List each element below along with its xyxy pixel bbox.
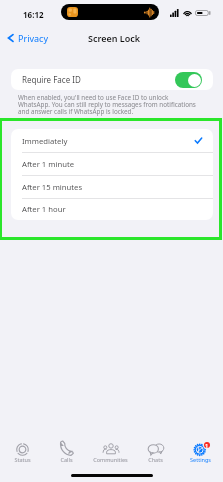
- button[interactable]: Chats: [133, 443, 178, 463]
- button[interactable]: Require Face ID: [11, 69, 213, 90]
- button[interactable]: Calls: [44, 443, 88, 463]
- staticText: 16:12: [23, 9, 44, 20]
- staticText: Immediately: [22, 136, 68, 146]
- staticText: Require Face ID: [22, 74, 81, 85]
- button[interactable]: Require Face ID toggle: [175, 72, 202, 88]
- other: Settings: [194, 443, 207, 456]
- staticText: After 1 hour: [22, 204, 66, 214]
- button[interactable]: Privacy: [6, 30, 50, 46]
- other: Status: [16, 443, 29, 456]
- other: Communities: [103, 443, 119, 455]
- staticText: Status: [14, 456, 31, 463]
- button[interactable]: Immediately: [11, 129, 213, 152]
- button[interactable]: Settings: [178, 443, 223, 463]
- staticText: Privacy: [18, 32, 49, 44]
- staticText: Screen Lock: [88, 32, 141, 44]
- button[interactable]: After 15 minutes: [11, 175, 213, 198]
- staticText: 1: [205, 442, 209, 448]
- button[interactable]: After 1 minute: [11, 152, 213, 175]
- button[interactable]: Communities: [88, 443, 133, 463]
- staticText: When enabled, you'll need to use Face ID…: [18, 93, 200, 116]
- button[interactable]: Status: [0, 443, 44, 463]
- button[interactable]: After 1 hour: [11, 198, 213, 220]
- staticText: After 1 minute: [22, 159, 75, 169]
- staticText: After 15 minutes: [22, 182, 83, 192]
- other: Calls: [60, 443, 73, 456]
- staticText: Calls: [60, 456, 73, 463]
- other: Chats: [148, 443, 164, 455]
- staticText: Settings: [190, 456, 211, 463]
- staticText: Communities: [93, 456, 128, 463]
- staticText: Chats: [148, 456, 163, 463]
